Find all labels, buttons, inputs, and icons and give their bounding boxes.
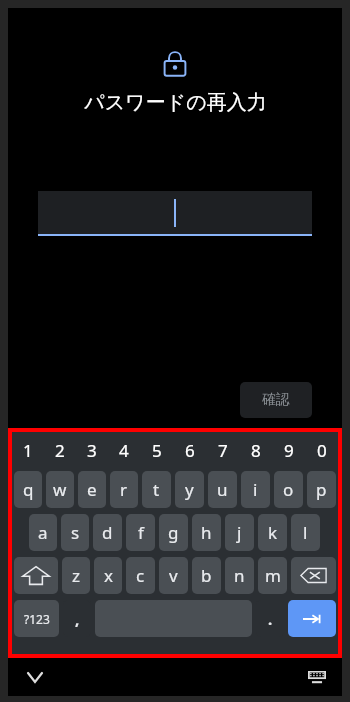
button[interactable]: c xyxy=(126,557,155,594)
button[interactable]: o xyxy=(274,471,303,508)
staticText: l xyxy=(303,521,308,544)
button[interactable]: s xyxy=(61,514,89,551)
button[interactable]: , xyxy=(63,600,91,637)
button[interactable]: 4 xyxy=(108,432,140,468)
button[interactable]: 3 xyxy=(76,432,108,468)
button[interactable]: b xyxy=(192,557,221,594)
button[interactable]: f xyxy=(126,514,155,551)
button[interactable]: 5 xyxy=(140,432,173,468)
staticText: i xyxy=(253,478,258,501)
button[interactable]: m xyxy=(258,557,287,594)
staticText: c xyxy=(136,564,145,587)
staticText: 1 xyxy=(23,439,33,462)
button[interactable]: w xyxy=(46,471,74,508)
staticText: q xyxy=(23,478,34,501)
staticText: r xyxy=(120,478,128,501)
button[interactable]: p xyxy=(307,471,336,508)
button[interactable]: Shift xyxy=(14,557,58,594)
staticText: n xyxy=(234,564,245,587)
button[interactable]: a xyxy=(29,514,57,551)
button[interactable]: 確認 xyxy=(240,382,312,418)
staticText: 0 xyxy=(317,439,327,462)
button[interactable]: v xyxy=(159,557,188,594)
button[interactable]: Backspace xyxy=(291,557,336,594)
staticText: e xyxy=(87,478,97,501)
button[interactable]: 1 xyxy=(12,432,44,468)
staticText: u xyxy=(217,478,228,501)
button[interactable]: n xyxy=(225,557,254,594)
staticText: 4 xyxy=(119,439,129,462)
staticText: a xyxy=(38,521,48,544)
staticText: z xyxy=(72,564,80,587)
staticText: 確認 xyxy=(262,391,290,409)
button[interactable]: 7 xyxy=(206,432,239,468)
button[interactable]: Hide keyboard xyxy=(20,662,50,692)
button[interactable]: x xyxy=(94,557,122,594)
staticText: t xyxy=(153,478,160,501)
staticText: b xyxy=(201,564,212,587)
staticText: v xyxy=(169,564,178,587)
button[interactable]: q xyxy=(14,471,42,508)
staticText: 3 xyxy=(87,439,97,462)
button[interactable]: k xyxy=(258,514,287,551)
staticText: j xyxy=(237,521,242,544)
staticText: , xyxy=(75,609,80,629)
button[interactable]: Change keyboard xyxy=(302,662,332,692)
button[interactable]: u xyxy=(208,471,237,508)
button[interactable]: Enter xyxy=(288,600,336,637)
staticText: . xyxy=(268,609,273,629)
button[interactable]: 9 xyxy=(272,432,305,468)
staticText: k xyxy=(268,521,278,544)
button[interactable]: 0 xyxy=(305,432,338,468)
staticText: p xyxy=(316,478,327,501)
button[interactable]: z xyxy=(62,557,90,594)
button[interactable]: j xyxy=(225,514,254,551)
button[interactable]: ?123 xyxy=(14,600,59,637)
button[interactable]: t xyxy=(142,471,171,508)
button[interactable]: l xyxy=(291,514,320,551)
button[interactable]: . xyxy=(256,600,284,637)
staticText: 7 xyxy=(218,439,228,462)
staticText: 9 xyxy=(284,439,294,462)
button[interactable]: 8 xyxy=(239,432,272,468)
staticText: パスワードの再入力 xyxy=(84,90,267,115)
button[interactable]: i xyxy=(241,471,270,508)
staticText: g xyxy=(168,521,179,544)
staticText: 8 xyxy=(251,439,261,462)
button[interactable]: r xyxy=(110,471,138,508)
button[interactable]: e xyxy=(78,471,106,508)
staticText: w xyxy=(53,478,67,501)
other: Lock xyxy=(162,50,188,78)
staticText: ?123 xyxy=(24,611,50,627)
staticText: h xyxy=(201,521,212,544)
staticText: x xyxy=(104,564,113,587)
button[interactable]: d xyxy=(93,514,122,551)
button[interactable] xyxy=(38,191,312,236)
button[interactable]: g xyxy=(159,514,188,551)
staticText: s xyxy=(71,521,80,544)
staticText: 5 xyxy=(152,439,162,462)
staticText: m xyxy=(265,564,281,587)
staticText: 2 xyxy=(55,439,65,462)
button[interactable]: y xyxy=(175,471,204,508)
button[interactable]: 6 xyxy=(173,432,206,468)
button[interactable]: 2 xyxy=(44,432,76,468)
staticText: y xyxy=(185,478,194,501)
staticText: d xyxy=(102,521,113,544)
staticText: o xyxy=(283,478,294,501)
staticText: 6 xyxy=(185,439,195,462)
button[interactable]: h xyxy=(192,514,221,551)
staticText: f xyxy=(138,521,144,544)
